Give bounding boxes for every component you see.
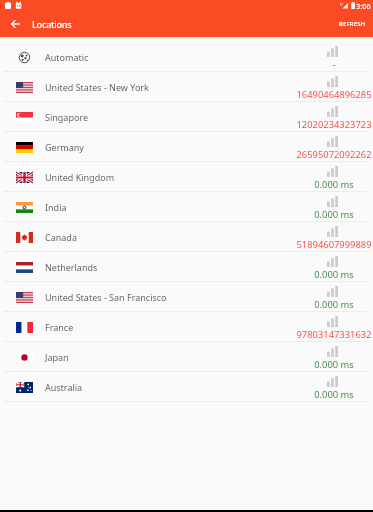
- staticText: Japan: [45, 351, 69, 363]
- staticText: 0.000 ms: [314, 388, 354, 401]
- button[interactable]: REFRESH: [331, 11, 373, 37]
- staticText: United States - New York: [45, 81, 149, 93]
- staticText: United Kingdom: [45, 171, 115, 183]
- staticText: 0.000 ms: [314, 208, 354, 221]
- staticText: REFRESH: [339, 20, 366, 28]
- button[interactable]: Automatic: [0, 42, 373, 72]
- button[interactable]: Canada: [0, 222, 373, 252]
- staticText: 0.000 ms: [314, 298, 354, 311]
- staticText: France: [45, 321, 74, 333]
- staticText: 51894607999889: [296, 238, 372, 251]
- staticText: Canada: [45, 231, 77, 243]
- staticText: Australia: [45, 381, 83, 393]
- button[interactable]: United Kingdom: [0, 162, 373, 192]
- button[interactable]: France: [0, 312, 373, 342]
- staticText: 16490464896285: [296, 88, 372, 101]
- button[interactable]: United States - New York: [0, 72, 373, 102]
- button[interactable]: United States - San Francisco: [0, 282, 373, 312]
- button[interactable]: Japan: [0, 342, 373, 372]
- staticText: 0.000 ms: [314, 358, 354, 371]
- button[interactable]: Australia: [0, 372, 373, 402]
- staticText: Locations: [32, 18, 72, 31]
- staticText: -: [332, 58, 336, 71]
- staticText: Singapore: [45, 111, 89, 123]
- staticText: Germany: [45, 141, 84, 153]
- staticText: 12020234323723: [296, 118, 372, 131]
- staticText: 0.000 ms: [314, 178, 354, 191]
- staticText: Netherlands: [45, 261, 98, 273]
- button[interactable]: India: [0, 192, 373, 222]
- button[interactable]: Germany: [0, 132, 373, 162]
- button[interactable]: Singapore: [0, 102, 373, 132]
- staticText: 0.000 ms: [314, 268, 354, 281]
- staticText: India: [45, 201, 67, 213]
- button[interactable]: Navigate up: [0, 11, 26, 37]
- staticText: 26595072092262: [296, 148, 372, 161]
- staticText: 3:06: [356, 1, 371, 11]
- staticText: Automatic: [45, 51, 89, 63]
- staticText: United States - San Francisco: [45, 291, 167, 303]
- staticText: 97803147331632: [296, 328, 372, 341]
- button[interactable]: Netherlands: [0, 252, 373, 282]
